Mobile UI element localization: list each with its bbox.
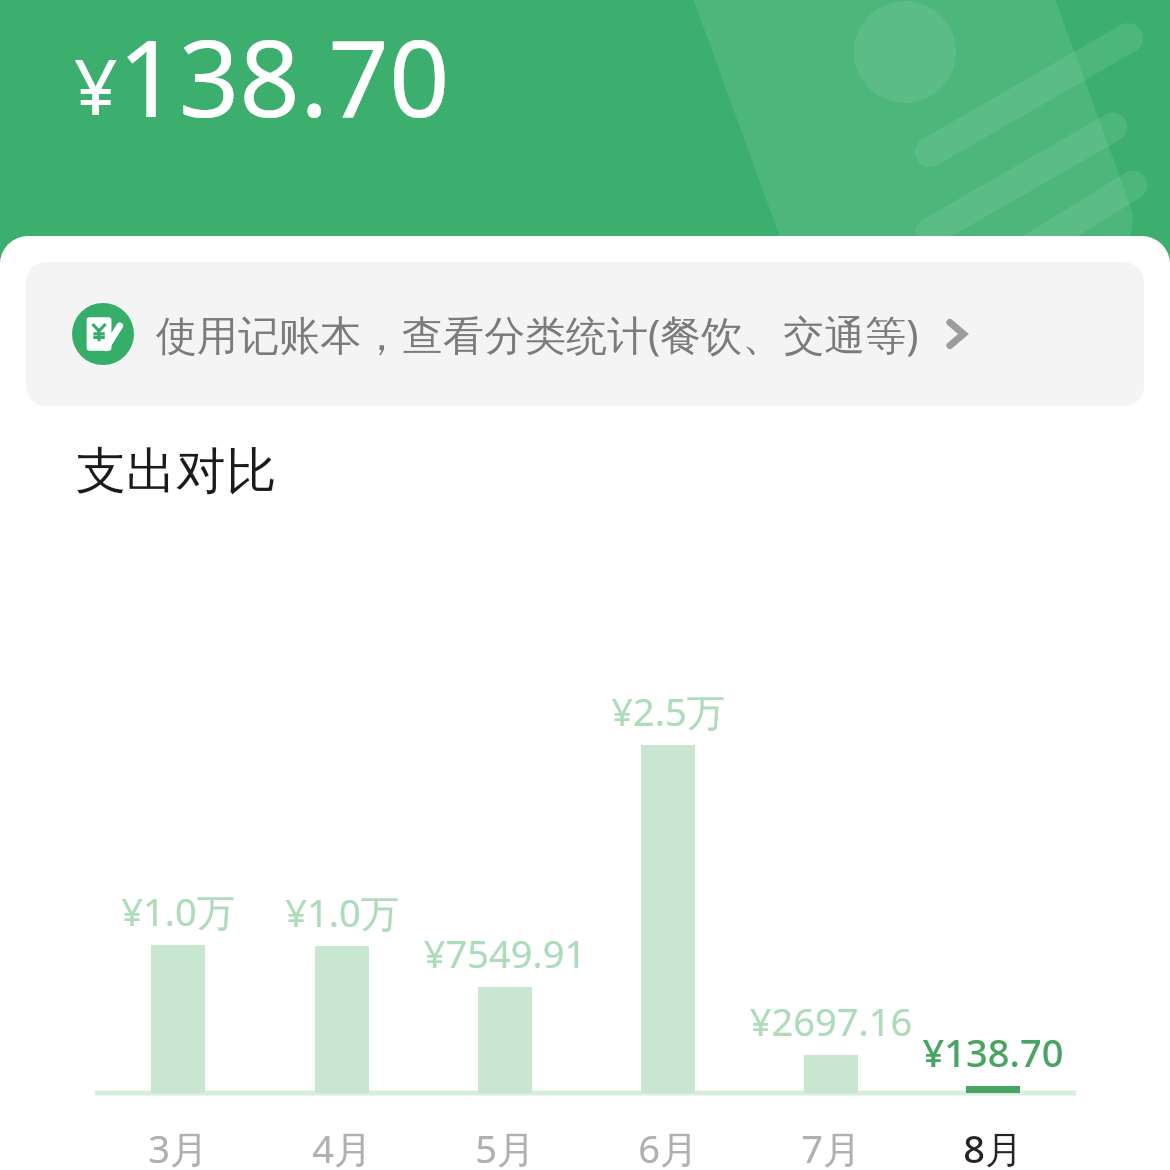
staticText: ¥1.0万 [212, 886, 472, 938]
staticText: 使用记账本，查看分类统计(餐饮、交通等) [156, 306, 919, 362]
button[interactable]: 5月 [425, 1122, 585, 1170]
staticText: ¥2.5万 [538, 685, 798, 737]
staticText: ¥138.70 [863, 1026, 1123, 1078]
staticText: 支出对比 [76, 440, 276, 503]
staticText: 138.70 [118, 4, 450, 148]
button[interactable]: 3月 [98, 1122, 258, 1170]
staticText: ¥1.0万 [48, 885, 308, 937]
button[interactable]: 4月 [262, 1122, 422, 1170]
staticText: ¥ [74, 34, 118, 138]
button[interactable]: 6月 [588, 1122, 748, 1170]
button[interactable]: 8月 [913, 1122, 1073, 1170]
button[interactable]: 7月 [751, 1122, 911, 1170]
other: 查看分类统计 [939, 317, 973, 351]
staticText: ¥2697.16 [701, 995, 961, 1047]
staticText: ¥7549.91 [375, 927, 635, 979]
button[interactable]: 使用记账本，查看分类统计(餐饮、交通等) [26, 262, 1144, 406]
